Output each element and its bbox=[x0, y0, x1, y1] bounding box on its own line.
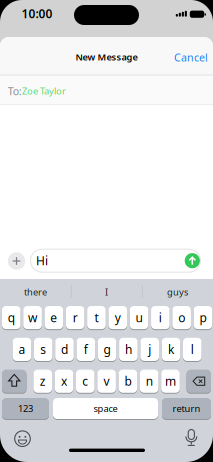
staticText: y bbox=[115, 310, 121, 325]
button[interactable]: s bbox=[34, 337, 52, 361]
staticText: q bbox=[8, 310, 15, 325]
staticText: o bbox=[178, 310, 185, 325]
staticText: a bbox=[18, 341, 25, 357]
staticText: guys bbox=[167, 286, 188, 298]
staticText: b bbox=[124, 373, 131, 389]
button[interactable]: r bbox=[66, 305, 84, 330]
button[interactable]: Zoe Taylor bbox=[22, 85, 82, 97]
button[interactable]: Shift bbox=[2, 369, 26, 393]
staticText: Zoe Taylor bbox=[22, 85, 66, 97]
button[interactable]: a bbox=[13, 337, 31, 361]
button[interactable]: n bbox=[140, 369, 158, 393]
staticText: there bbox=[24, 286, 47, 298]
button[interactable]: Send bbox=[185, 253, 200, 268]
button[interactable]: m bbox=[161, 369, 180, 393]
staticText: c bbox=[82, 373, 88, 389]
button[interactable]: x bbox=[55, 369, 73, 393]
button[interactable]: guys bbox=[144, 281, 210, 303]
staticText: j bbox=[148, 341, 151, 357]
staticText: v bbox=[104, 373, 110, 389]
staticText: t bbox=[94, 310, 98, 325]
button[interactable]: v bbox=[97, 369, 116, 393]
staticText: n bbox=[146, 373, 153, 389]
staticText: m bbox=[165, 373, 176, 389]
button[interactable]: u bbox=[130, 305, 148, 330]
button[interactable]: Emoji bbox=[13, 430, 31, 448]
button[interactable]: h bbox=[119, 337, 138, 361]
staticText: w bbox=[28, 310, 37, 325]
button[interactable]: b bbox=[119, 369, 137, 393]
button[interactable]: p bbox=[194, 305, 212, 330]
staticText: l bbox=[191, 341, 194, 357]
button[interactable]: 123 bbox=[2, 397, 49, 419]
button[interactable]: f bbox=[76, 337, 95, 361]
button[interactable]: w bbox=[23, 305, 42, 330]
button[interactable]: y bbox=[108, 305, 127, 330]
staticText: 123 bbox=[18, 402, 33, 415]
staticText: s bbox=[40, 341, 46, 357]
button[interactable]: j bbox=[140, 337, 159, 361]
staticText: p bbox=[199, 310, 206, 325]
button[interactable]: Cancel bbox=[168, 51, 208, 63]
staticText: z bbox=[40, 373, 46, 389]
button[interactable]: Apps bbox=[8, 252, 25, 270]
button[interactable]: i bbox=[151, 305, 170, 330]
staticText: i bbox=[159, 310, 162, 325]
button[interactable]: space bbox=[53, 397, 158, 419]
button[interactable]: Dictation bbox=[184, 429, 198, 448]
button[interactable]: Delete bbox=[186, 369, 211, 393]
button[interactable]: o bbox=[172, 305, 191, 330]
button[interactable]: return bbox=[162, 397, 211, 419]
button[interactable]: I bbox=[73, 281, 139, 303]
staticText: 10:00 bbox=[21, 5, 52, 21]
staticText: space bbox=[93, 402, 117, 415]
staticText: r bbox=[73, 310, 78, 325]
staticText: u bbox=[136, 310, 143, 325]
staticText: f bbox=[84, 341, 88, 357]
staticText: To: bbox=[8, 84, 22, 98]
button[interactable]: d bbox=[55, 337, 74, 361]
staticText: New Message bbox=[75, 51, 137, 63]
staticText: Cancel bbox=[174, 50, 208, 64]
staticText: k bbox=[168, 341, 174, 357]
button[interactable]: z bbox=[33, 369, 52, 393]
button[interactable]: c bbox=[76, 369, 95, 393]
button[interactable]: l bbox=[183, 337, 202, 361]
staticText: h bbox=[125, 341, 132, 357]
staticText: d bbox=[61, 341, 68, 357]
button[interactable]: there bbox=[2, 281, 68, 303]
staticText: e bbox=[50, 310, 57, 325]
button[interactable]: t bbox=[87, 305, 106, 330]
staticText: Hi bbox=[36, 253, 48, 269]
button[interactable]: k bbox=[162, 337, 180, 361]
button[interactable]: e bbox=[45, 305, 63, 330]
staticText: return bbox=[172, 402, 200, 415]
staticText: x bbox=[61, 373, 67, 389]
button[interactable]: q bbox=[2, 305, 20, 330]
button[interactable]: g bbox=[98, 337, 116, 361]
staticText: I bbox=[105, 286, 108, 298]
staticText: g bbox=[104, 341, 111, 357]
